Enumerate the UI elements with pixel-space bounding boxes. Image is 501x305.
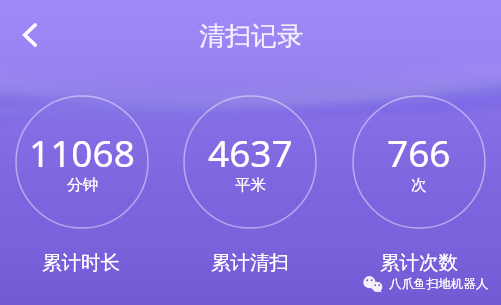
staticText: 累计时长 [21, 250, 141, 275]
button[interactable]: 4637 [183, 95, 317, 229]
staticText: 11068 [29, 127, 135, 177]
staticText: 次 [411, 175, 427, 195]
staticText: 八爪鱼扫地机器人 [389, 276, 489, 292]
button[interactable]: 八爪鱼扫地机器人 [363, 275, 489, 293]
staticText: 累计次数 [359, 250, 479, 275]
button[interactable]: 11068 [15, 95, 149, 229]
button[interactable]: Back [9, 14, 51, 56]
staticText: 平米 [235, 175, 266, 195]
staticText: 累计清扫 [190, 250, 310, 275]
staticText: 4637 [208, 127, 293, 177]
staticText: 清扫记录 [199, 20, 303, 53]
staticText: 766 [387, 127, 451, 177]
button[interactable]: 766 [352, 95, 486, 229]
staticText: 分钟 [67, 175, 98, 195]
